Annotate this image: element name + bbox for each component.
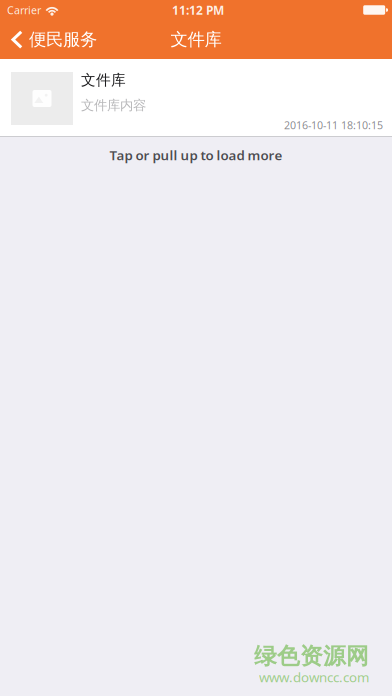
button[interactable]: 文件库 (0, 59, 392, 136)
staticText: 文件库内容 (81, 97, 146, 113)
staticText: 绿色资源网 (254, 642, 369, 670)
staticText: Tap or pull up to load more (109, 146, 282, 164)
staticText: Carrier (7, 3, 41, 17)
button[interactable]: 便民服务 (0, 20, 107, 59)
staticText: 便民服务 (29, 29, 97, 50)
staticText: 2016-10-11 18:10:15 (284, 118, 383, 132)
button[interactable]: Tap or pull up to load more (0, 137, 392, 173)
staticText: 文件库 (170, 29, 221, 50)
staticText: www.downcc.com (259, 668, 369, 686)
staticText: 11:12 PM (172, 2, 224, 18)
staticText: 文件库 (81, 71, 126, 89)
